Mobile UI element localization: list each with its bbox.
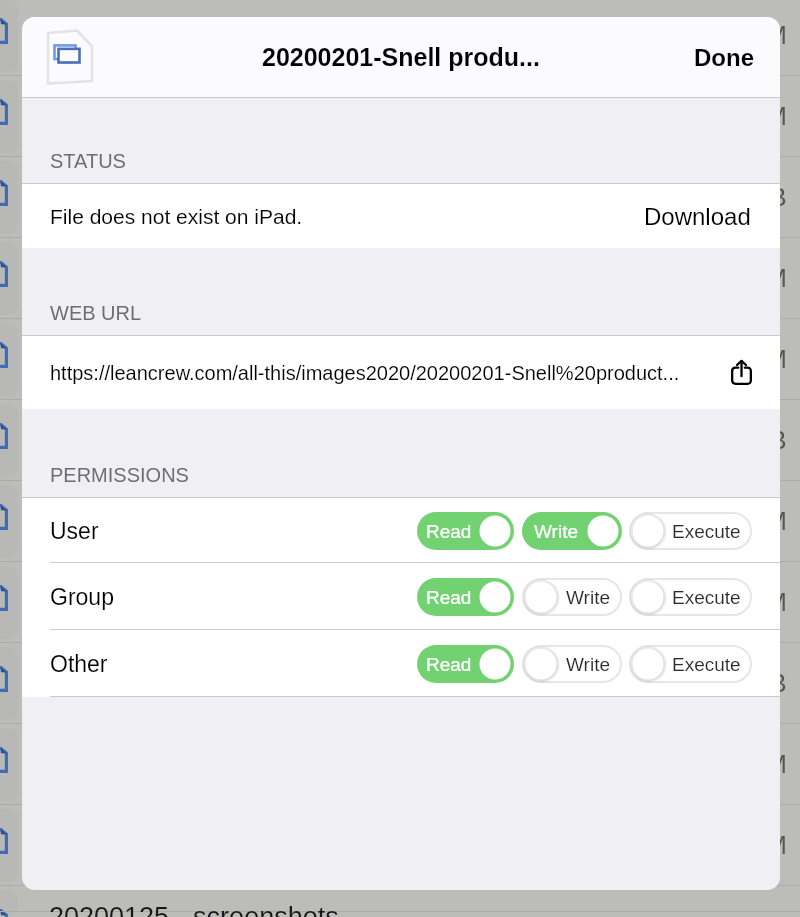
button[interactable]: File does not exist on iPad. xyxy=(22,184,780,248)
button[interactable]: Read xyxy=(417,578,514,616)
staticText: Read xyxy=(426,654,472,675)
button[interactable]: Write xyxy=(522,645,622,683)
button[interactable]: Execute xyxy=(629,512,752,550)
staticText: Done xyxy=(694,44,754,71)
staticText: Read xyxy=(426,521,472,542)
staticText: Write xyxy=(566,587,610,608)
staticText: 20200201-Snell produ... xyxy=(262,43,540,71)
staticText: Execute xyxy=(672,521,741,542)
staticText: Execute xyxy=(672,587,741,608)
button[interactable]: Write xyxy=(522,512,622,550)
staticText: 4:15 PM xyxy=(690,830,787,859)
button[interactable]: Read xyxy=(417,645,514,683)
staticText: Execute xyxy=(672,654,741,675)
button[interactable]: Share xyxy=(726,355,757,390)
staticText: Write xyxy=(566,654,610,675)
staticText: Other xyxy=(50,651,108,677)
button[interactable]: https://leancrew.com/all-this/images2020… xyxy=(22,336,780,409)
staticText: 4:15 PM xyxy=(690,263,787,292)
staticText: https://leancrew.com/all-this/images2020… xyxy=(50,362,680,384)
button[interactable]: Write xyxy=(522,578,622,616)
staticText: PERMISSIONS xyxy=(50,464,189,486)
staticText: File does not exist on iPad. xyxy=(50,205,303,228)
staticText: 1 MB xyxy=(726,182,787,211)
button[interactable]: Execute xyxy=(629,578,752,616)
staticText: 1 MB xyxy=(726,425,787,454)
button[interactable]: Execute xyxy=(629,645,752,683)
button[interactable]: Read xyxy=(417,512,514,550)
staticText: Read xyxy=(426,587,472,608)
staticText: 4:15 PM xyxy=(690,749,787,778)
staticText: 4:15 PM xyxy=(690,20,787,49)
staticText: 20200125 - screenshots xyxy=(49,902,339,917)
staticText: 4:15 PM xyxy=(690,344,787,373)
button[interactable]: Done xyxy=(668,28,780,87)
staticText: Write xyxy=(534,521,578,542)
staticText: 4:15 PM xyxy=(690,587,787,616)
staticText: Download xyxy=(644,203,751,230)
staticText: WEB URL xyxy=(50,302,142,324)
staticText: Group xyxy=(50,584,114,610)
staticText: STATUS xyxy=(50,150,126,172)
staticText: 4:15 PM xyxy=(690,101,787,130)
staticText: User xyxy=(50,518,99,544)
staticText: 4:15 PM xyxy=(690,506,787,535)
staticText: 1 MB xyxy=(726,668,787,697)
